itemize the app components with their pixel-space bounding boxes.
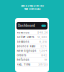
button[interactable]: Avg. Time bbox=[17, 62, 47, 67]
button[interactable]: Active Users bbox=[17, 35, 47, 40]
staticText: Avg. Time bbox=[17, 63, 31, 66]
button[interactable]: Dashboard bbox=[16, 22, 47, 29]
staticText: Refunds bbox=[17, 58, 29, 61]
staticText: 12,480 bbox=[37, 36, 47, 39]
staticText: 19 bbox=[44, 58, 47, 61]
button[interactable]: New Signups bbox=[17, 49, 47, 53]
staticText: Take a Deep Dive into bbox=[20, 4, 43, 7]
staticText: Sessions bbox=[17, 40, 29, 43]
staticText: 9,310 bbox=[39, 40, 47, 43]
staticText: Dashboard bbox=[18, 24, 35, 27]
staticText: Bounce Rate bbox=[17, 45, 36, 48]
button[interactable]: Orders bbox=[17, 53, 47, 58]
staticText: 1,204 bbox=[39, 49, 47, 52]
staticText: Revenue bbox=[17, 31, 30, 34]
staticText: 842 bbox=[41, 54, 47, 57]
staticText: Orders bbox=[17, 54, 26, 57]
button[interactable]: Bounce Rate bbox=[17, 44, 47, 49]
staticText: Your Own Data bbox=[24, 8, 40, 10]
staticText: 3m 12s bbox=[38, 63, 47, 66]
staticText: $48.2k bbox=[37, 31, 47, 34]
staticText: Active Users bbox=[17, 36, 34, 39]
button[interactable]: Sessions bbox=[17, 40, 47, 44]
button[interactable]: Revenue bbox=[17, 30, 47, 35]
staticText: New Signups bbox=[17, 49, 36, 52]
button[interactable]: Refunds bbox=[17, 58, 47, 62]
staticText: 32% bbox=[40, 45, 47, 48]
